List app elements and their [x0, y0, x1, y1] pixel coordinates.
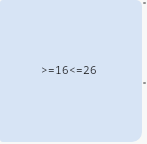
staticText: >=16<=26 [41, 62, 97, 77]
button[interactable]: >=16<=26 [0, 0, 142, 142]
